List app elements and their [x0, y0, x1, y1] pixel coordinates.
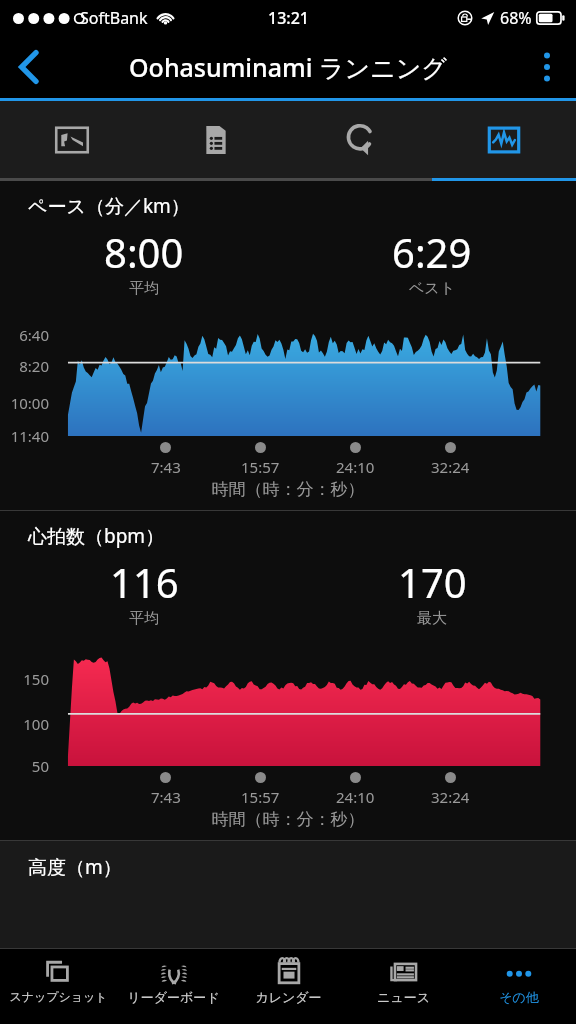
staticText: 平均 [129, 609, 159, 628]
staticText: 50 [0, 756, 49, 776]
staticText: その他 [499, 989, 539, 1005]
staticText: 100 [0, 714, 49, 734]
button[interactable]: ニュース [346, 949, 461, 1024]
staticText: 15:57 [241, 787, 280, 807]
staticText: 15:57 [241, 457, 280, 477]
staticText: 時間（時：分：秒） [0, 809, 576, 830]
button[interactable]: Laps [288, 101, 432, 178]
button[interactable]: カレンダー [231, 949, 346, 1024]
staticText: 8:20 [0, 356, 49, 376]
staticText: SoftBank [80, 7, 148, 29]
staticText: 心拍数（bpm） [28, 523, 165, 549]
staticText: 7:43 [151, 787, 181, 807]
staticText: 68% [500, 7, 532, 29]
staticText: 170 [398, 555, 467, 609]
staticText: スナップショット [9, 989, 108, 1004]
staticText: 150 [0, 669, 49, 689]
button[interactable]: リーダーボード [116, 949, 231, 1024]
staticText: 24:10 [336, 787, 375, 807]
staticText: 6:40 [0, 325, 49, 345]
staticText: ベスト [409, 279, 456, 298]
staticText: ペース（分／km） [28, 193, 190, 219]
staticText: 32:24 [431, 457, 470, 477]
staticText: 6:29 [392, 225, 472, 279]
button[interactable]: More options [518, 36, 576, 98]
staticText: 10:00 [0, 393, 49, 413]
staticText: 32:24 [431, 787, 470, 807]
staticText: Oohasuminami ランニング [129, 50, 447, 84]
staticText: 平均 [129, 279, 159, 298]
staticText: 時間（時：分：秒） [0, 479, 576, 500]
staticText: リーダーボード [127, 989, 220, 1005]
staticText: 116 [110, 555, 179, 609]
staticText: カレンダー [255, 989, 322, 1005]
staticText: 24:10 [336, 457, 375, 477]
staticText: 高度（m） [28, 854, 122, 880]
staticText: 11:40 [0, 426, 49, 446]
staticText: 13:21 [268, 7, 309, 29]
button[interactable]: Map [0, 101, 144, 178]
staticText: 最大 [417, 609, 447, 628]
staticText: 8:00 [104, 225, 184, 279]
staticText: ニュース [377, 989, 430, 1005]
button[interactable]: スナップショット [0, 949, 116, 1024]
button[interactable]: Charts [432, 101, 576, 178]
button[interactable]: その他 [461, 949, 576, 1024]
staticText: 7:43 [151, 457, 181, 477]
button[interactable]: Back [0, 36, 58, 98]
button[interactable]: Splits [144, 101, 288, 178]
